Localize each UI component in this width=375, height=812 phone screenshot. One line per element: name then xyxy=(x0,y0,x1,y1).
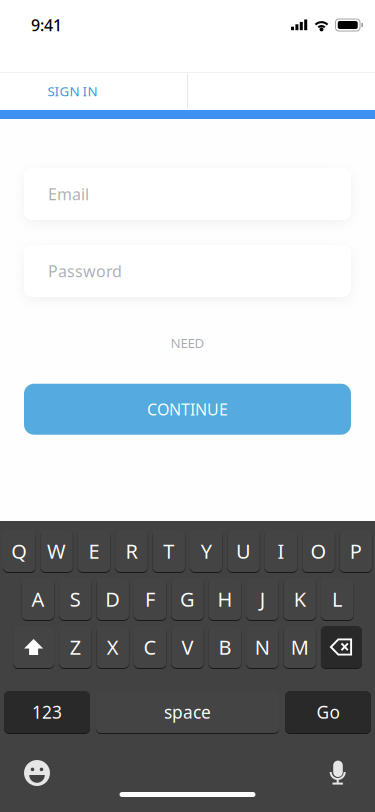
button[interactable]: V xyxy=(171,626,204,668)
staticText: SIGN IN xyxy=(47,82,97,100)
button[interactable]: H xyxy=(209,578,241,620)
staticText: F xyxy=(145,586,155,612)
button[interactable]: B xyxy=(209,626,241,668)
button[interactable]: M xyxy=(283,626,316,668)
button[interactable]: D xyxy=(96,578,129,620)
staticText: T xyxy=(163,538,174,564)
staticText: H xyxy=(217,586,232,612)
button[interactable]: 123 xyxy=(4,691,90,733)
button[interactable]: P xyxy=(340,530,372,572)
button[interactable]: O xyxy=(302,530,335,572)
staticText: J xyxy=(260,586,265,612)
button[interactable]: CONTINUE xyxy=(24,384,351,435)
staticText: NEED xyxy=(170,334,204,352)
button[interactable]: S xyxy=(59,578,91,620)
button[interactable]: Z xyxy=(59,626,91,668)
staticText: Go xyxy=(316,700,339,723)
staticText: C xyxy=(144,634,157,660)
button[interactable]: L xyxy=(321,578,353,620)
staticText: 9:41 xyxy=(31,14,62,36)
button[interactable]: F xyxy=(134,578,166,620)
button[interactable]: A xyxy=(22,578,54,620)
staticText: space xyxy=(164,700,211,723)
button[interactable]: Emoji xyxy=(22,758,52,788)
staticText: Q xyxy=(11,538,27,564)
staticText: S xyxy=(70,586,81,612)
staticText: 123 xyxy=(32,700,62,723)
button[interactable]: space xyxy=(96,691,279,733)
staticText: K xyxy=(294,586,306,612)
button[interactable]: T xyxy=(153,530,185,572)
staticText: B xyxy=(218,634,231,660)
button[interactable]: G xyxy=(171,578,204,620)
staticText: W xyxy=(47,538,66,564)
button[interactable]: SIGN IN xyxy=(0,72,145,110)
button[interactable]: C xyxy=(134,626,166,668)
button[interactable]: Delete xyxy=(321,626,362,668)
staticText: V xyxy=(181,634,193,660)
staticText: U xyxy=(236,538,251,564)
staticText: Y xyxy=(201,538,212,564)
button[interactable]: U xyxy=(227,530,260,572)
staticText: M xyxy=(291,634,309,660)
staticText: D xyxy=(105,586,120,612)
staticText: CONTINUE xyxy=(147,399,228,420)
staticText: O xyxy=(310,538,326,564)
button[interactable]: R xyxy=(115,530,148,572)
staticText: X xyxy=(107,634,119,660)
button[interactable]: K xyxy=(283,578,316,620)
staticText: L xyxy=(332,586,342,612)
button[interactable]: Y xyxy=(190,530,222,572)
staticText: Email xyxy=(48,183,89,205)
button[interactable]: Q xyxy=(3,530,35,572)
staticText: N xyxy=(255,634,270,660)
staticText: R xyxy=(125,538,137,564)
button[interactable]: J xyxy=(246,578,278,620)
button[interactable]: W xyxy=(40,530,73,572)
staticText: A xyxy=(31,586,44,612)
staticText: I xyxy=(277,538,284,564)
button[interactable]: E xyxy=(78,530,110,572)
button[interactable]: Shift xyxy=(13,626,54,668)
button[interactable]: Dictate xyxy=(323,758,353,788)
button[interactable]: X xyxy=(96,626,129,668)
button[interactable]: Go xyxy=(285,691,371,733)
button[interactable]: N xyxy=(246,626,278,668)
staticText: P xyxy=(350,538,362,564)
staticText: E xyxy=(88,538,99,564)
button[interactable]: I xyxy=(265,530,297,572)
staticText: Password xyxy=(48,260,122,282)
staticText: Z xyxy=(70,634,81,660)
staticText: G xyxy=(180,586,195,612)
